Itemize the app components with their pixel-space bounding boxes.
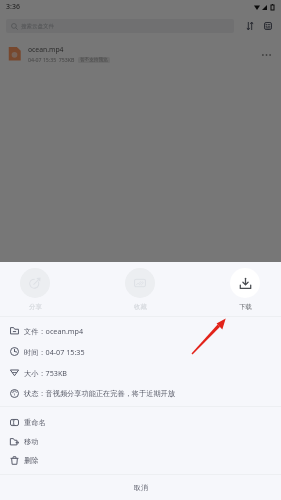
button[interactable]: ocean.mp4 bbox=[0, 38, 281, 70]
staticText: 04-07 15:35 753KB bbox=[28, 56, 75, 63]
staticText: ocean.mp4 bbox=[28, 45, 64, 54]
button[interactable]: 下载 bbox=[230, 262, 260, 311]
staticText: 时间：04-07 15:35 bbox=[24, 347, 85, 357]
staticText: 文件：ocean.mp4 bbox=[24, 326, 84, 336]
button[interactable]: 移动 bbox=[0, 432, 281, 451]
staticText: 删除 bbox=[24, 456, 39, 465]
staticText: 重命名 bbox=[24, 418, 46, 427]
staticText: 大小：753KB bbox=[24, 368, 68, 378]
staticText: 移动 bbox=[24, 437, 39, 446]
button[interactable]: View mode bbox=[261, 19, 274, 32]
button[interactable]: 重命名 bbox=[0, 413, 281, 432]
button[interactable]: More options bbox=[260, 48, 273, 61]
staticText: 下载 bbox=[239, 303, 252, 311]
staticText: 暂不支持预览 bbox=[80, 57, 108, 63]
staticText: 分享 bbox=[29, 303, 42, 311]
staticText: 收藏 bbox=[134, 303, 147, 311]
staticText: 状态：音视频分享功能正在完善，将于近期开放 bbox=[24, 389, 175, 398]
button[interactable]: 取消 bbox=[0, 475, 281, 500]
button[interactable]: 收藏 bbox=[125, 262, 155, 311]
button[interactable]: 搜索云盘文件 bbox=[6, 19, 234, 33]
staticText: 3:36 bbox=[6, 2, 20, 12]
staticText: 取消 bbox=[134, 483, 148, 492]
button[interactable]: Sort bbox=[243, 19, 256, 32]
button[interactable]: 分享 bbox=[20, 262, 50, 311]
staticText: 搜索云盘文件 bbox=[21, 23, 54, 30]
button[interactable]: 删除 bbox=[0, 451, 281, 470]
